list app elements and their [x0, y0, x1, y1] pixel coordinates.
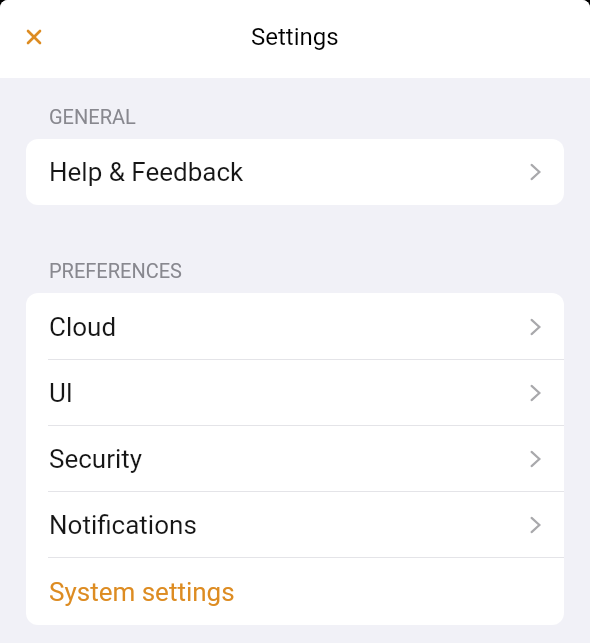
staticText: Settings — [251, 23, 339, 51]
staticText: Cloud — [49, 312, 117, 342]
button[interactable]: Cloud — [26, 293, 564, 360]
button[interactable]: System settings — [26, 558, 564, 625]
button[interactable]: Help & Feedback — [26, 139, 564, 205]
staticText: Help & Feedback — [49, 157, 244, 187]
staticText: System settings — [49, 577, 235, 607]
button[interactable]: Close — [11, 14, 57, 60]
staticText: GENERAL — [49, 105, 136, 128]
button[interactable]: UI — [26, 360, 564, 426]
staticText: Notifications — [49, 510, 197, 540]
staticText: UI — [49, 378, 73, 408]
button[interactable]: Security — [26, 426, 564, 492]
staticText: Security — [49, 444, 143, 474]
staticText: PREFERENCES — [49, 259, 182, 282]
button[interactable]: Notifications — [26, 492, 564, 558]
